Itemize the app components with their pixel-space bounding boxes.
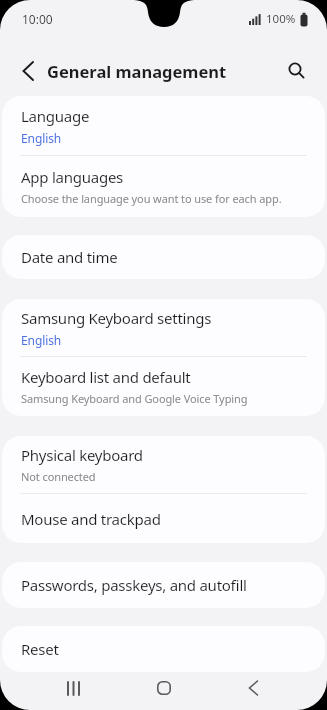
staticText: Date and time — [21, 247, 118, 267]
button[interactable]: App languages — [2, 156, 325, 217]
button[interactable] — [281, 55, 313, 87]
button[interactable] — [12, 55, 44, 87]
staticText: App languages — [21, 167, 124, 187]
staticText: Language — [21, 106, 90, 126]
staticText: English — [21, 130, 62, 146]
button[interactable]: Mouse and trackpad — [2, 494, 325, 543]
staticText: 100% — [266, 11, 296, 27]
button[interactable]: Samsung Keyboard settings — [2, 299, 325, 356]
staticText: Passwords, passkeys, and autofill — [21, 575, 247, 595]
staticText: Mouse and trackpad — [21, 509, 161, 529]
button[interactable]: Date and time — [2, 235, 325, 279]
staticText: General management — [47, 60, 227, 82]
staticText: Choose the language you want to use for … — [21, 191, 282, 206]
staticText: Samsung Keyboard settings — [21, 308, 212, 328]
staticText: 10:00 — [22, 11, 53, 27]
button[interactable]: Reset — [2, 626, 325, 672]
button[interactable] — [149, 673, 179, 703]
button[interactable]: Passwords, passkeys, and autofill — [2, 562, 325, 608]
staticText: English — [21, 332, 62, 348]
button[interactable]: Language — [2, 96, 325, 155]
button[interactable]: Physical keyboard — [2, 436, 325, 493]
staticText: Physical keyboard — [21, 445, 143, 465]
staticText: Reset — [21, 639, 59, 659]
button[interactable] — [59, 673, 89, 703]
button[interactable]: Keyboard list and default — [2, 357, 325, 416]
staticText: Not connected — [21, 469, 96, 484]
staticText: Samsung Keyboard and Google Voice Typing — [21, 391, 248, 406]
button[interactable] — [238, 673, 268, 703]
staticText: Keyboard list and default — [21, 367, 191, 387]
